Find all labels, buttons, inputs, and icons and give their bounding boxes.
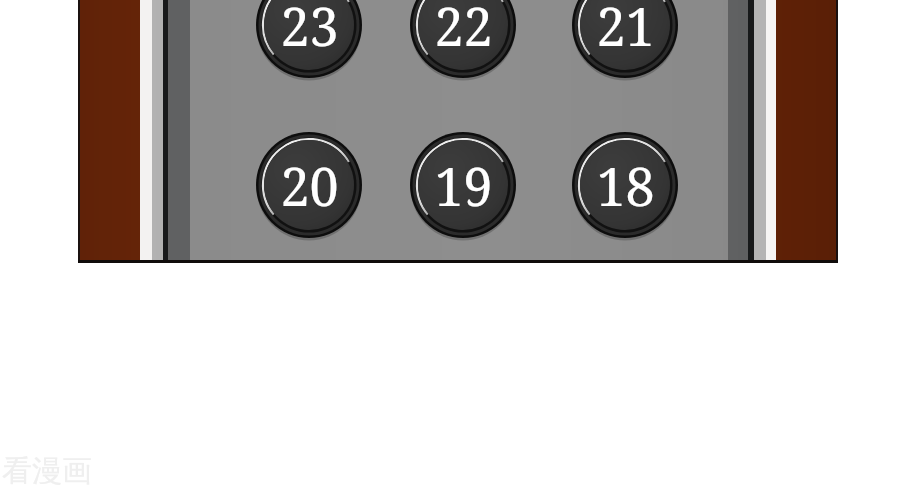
staticText: 看漫画: [2, 452, 92, 490]
staticText: 22: [434, 0, 493, 61]
staticText: 23: [280, 0, 339, 61]
staticText: 20: [280, 150, 339, 221]
button[interactable]: Floor 20: [256, 132, 362, 238]
staticText: 18: [596, 150, 655, 221]
button[interactable]: Floor 23: [256, 0, 362, 78]
button[interactable]: Floor 21: [572, 0, 678, 78]
button[interactable]: Floor 19: [410, 132, 516, 238]
button[interactable]: Floor 18: [572, 132, 678, 238]
staticText: 19: [434, 150, 493, 221]
staticText: 21: [596, 0, 655, 61]
button[interactable]: Floor 22: [410, 0, 516, 78]
